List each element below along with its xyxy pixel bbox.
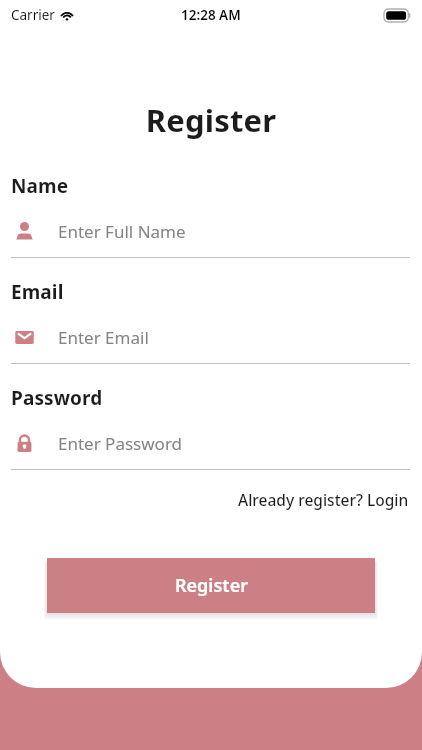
staticText: Register [0, 99, 422, 141]
staticText: Name [11, 173, 69, 199]
button[interactable]: Enter Full Name [0, 218, 422, 244]
staticText: Carrier [11, 6, 55, 24]
button[interactable]: Enter Email [0, 324, 422, 350]
staticText: 12:28 AM [181, 6, 241, 24]
staticText: Email [11, 279, 64, 305]
staticText: Enter Full Name [58, 220, 186, 243]
staticText: Already register? Login [238, 489, 409, 510]
staticText: Enter Password [58, 432, 183, 455]
button[interactable]: Enter Password [0, 430, 422, 456]
staticText: Password [11, 385, 103, 411]
button[interactable]: Already register? Login [236, 486, 411, 513]
staticText: Enter Email [58, 326, 149, 349]
button[interactable]: Register [47, 558, 375, 613]
staticText: Register [175, 573, 248, 598]
